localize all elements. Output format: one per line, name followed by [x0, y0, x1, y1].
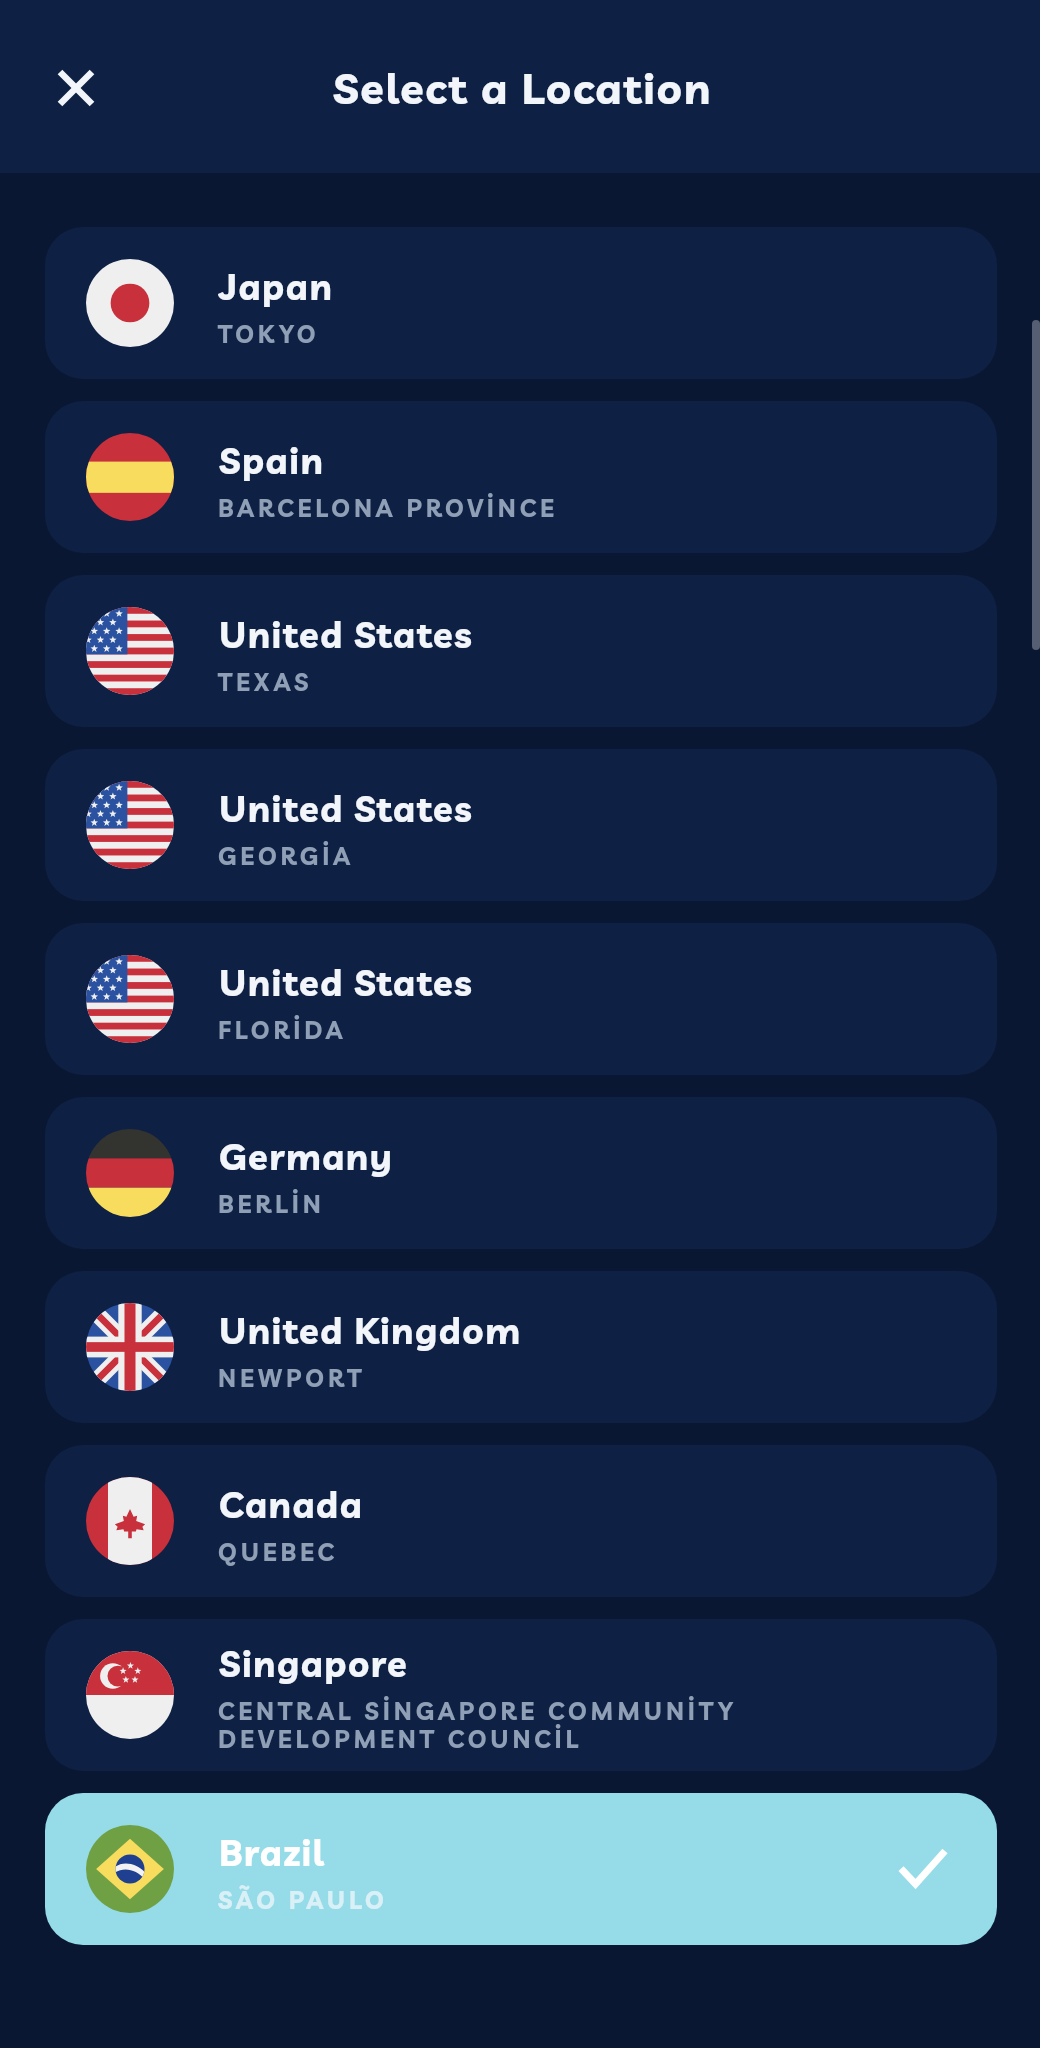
button[interactable]: Brazil — [45, 1793, 997, 1945]
staticText: FLORİDA — [218, 1015, 347, 1045]
staticText: NEWPORT — [218, 1363, 366, 1393]
staticText: United States — [219, 960, 474, 1005]
button[interactable]: United States — [45, 575, 997, 727]
staticText: Select a Location — [333, 61, 713, 115]
staticText: Brazil — [219, 1830, 326, 1875]
button[interactable]: Japan — [45, 227, 997, 379]
button[interactable]: Singapore — [45, 1619, 997, 1771]
button[interactable]: Close — [28, 40, 124, 136]
staticText: BERLİN — [218, 1189, 325, 1219]
button[interactable]: United States — [45, 923, 997, 1075]
staticText: DEVELOPMENT COUNCİL — [218, 1724, 583, 1754]
button[interactable]: United Kingdom — [45, 1271, 997, 1423]
staticText: United States — [219, 612, 474, 657]
staticText: United Kingdom — [219, 1308, 522, 1353]
staticText: QUEBEC — [218, 1537, 338, 1567]
button[interactable]: Spain — [45, 401, 997, 553]
staticText: GEORGİA — [218, 841, 354, 871]
staticText: SÃO PAULO — [218, 1885, 388, 1915]
button[interactable]: Germany — [45, 1097, 997, 1249]
staticText: Spain — [219, 438, 325, 483]
staticText: CENTRAL SİNGAPORE COMMUNİTY — [218, 1696, 737, 1726]
staticText: TOKYO — [218, 319, 320, 349]
staticText: Canada — [219, 1482, 364, 1527]
button[interactable]: United States — [45, 749, 997, 901]
staticText: TEXAS — [218, 667, 313, 697]
staticText: BARCELONA PROVİNCE — [218, 493, 558, 523]
staticText: Germany — [219, 1134, 394, 1179]
staticText: United States — [219, 786, 474, 831]
staticText: Singapore — [219, 1641, 409, 1686]
button[interactable]: Canada — [45, 1445, 997, 1597]
staticText: Japan — [219, 264, 334, 309]
